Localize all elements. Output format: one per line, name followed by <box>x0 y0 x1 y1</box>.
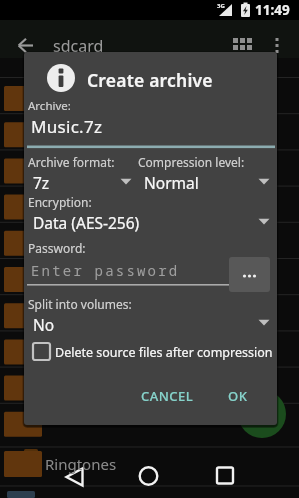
staticText: Music.7z <box>31 115 103 138</box>
button[interactable]: 7z <box>28 170 134 192</box>
staticText: Password: <box>28 240 86 256</box>
staticText: Archive: <box>28 98 71 114</box>
button[interactable]: Delete source files after compression <box>31 341 271 362</box>
staticText: 7z <box>33 172 50 193</box>
staticText: Data (AES-256) <box>33 212 140 233</box>
staticText: CANCEL <box>141 387 194 405</box>
staticText: Enter password <box>31 261 180 280</box>
staticText: No <box>33 314 55 335</box>
button[interactable]: No <box>28 312 271 334</box>
button[interactable]: Normal <box>138 170 271 192</box>
staticText: sdcard <box>53 35 104 57</box>
button[interactable] <box>229 257 270 292</box>
staticText: 11:49 <box>255 1 290 19</box>
staticText: Archive format: <box>28 154 115 170</box>
button[interactable]: OK <box>216 378 262 410</box>
staticText: Encryption: <box>28 194 92 210</box>
staticText: Normal <box>144 172 199 193</box>
button[interactable]: CANCEL <box>130 378 208 410</box>
staticText: Ringtones <box>45 454 117 474</box>
staticText: Create archive <box>87 68 213 92</box>
staticText: Delete source files after compression <box>55 344 273 361</box>
staticText: OK <box>228 387 248 405</box>
button[interactable]: Data (AES-256) <box>28 210 271 232</box>
staticText: Split into volumes: <box>28 296 132 312</box>
staticText: 3G <box>217 2 225 10</box>
staticText: Compression level: <box>138 154 245 170</box>
